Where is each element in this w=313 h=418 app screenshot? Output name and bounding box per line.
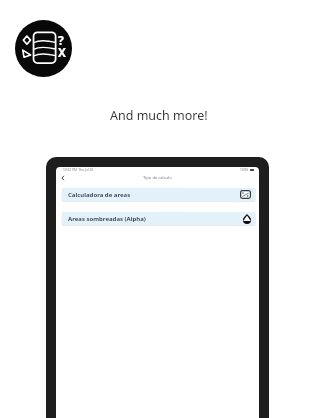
button[interactable]: Open image <box>240 190 251 199</box>
button[interactable]: Calculadora de areas <box>62 188 255 201</box>
staticText: ? <box>58 32 64 49</box>
button[interactable]: Shaded areas <box>243 214 251 224</box>
staticText: And much more! <box>110 107 208 124</box>
staticText: Calculadora de areas <box>68 191 131 199</box>
staticText: X <box>58 44 66 60</box>
button[interactable]: Areas sombreadas (Alpha) <box>62 212 255 225</box>
staticText: Areas sombreadas (Alpha) <box>68 215 146 223</box>
button[interactable]: Back <box>59 174 67 182</box>
button[interactable]: App logo <box>15 20 72 77</box>
staticText: 10:22 PM Thu Jul 20 <box>63 168 94 172</box>
staticText: 100% <box>240 168 249 172</box>
staticText: Tipo de calculo <box>143 175 172 181</box>
